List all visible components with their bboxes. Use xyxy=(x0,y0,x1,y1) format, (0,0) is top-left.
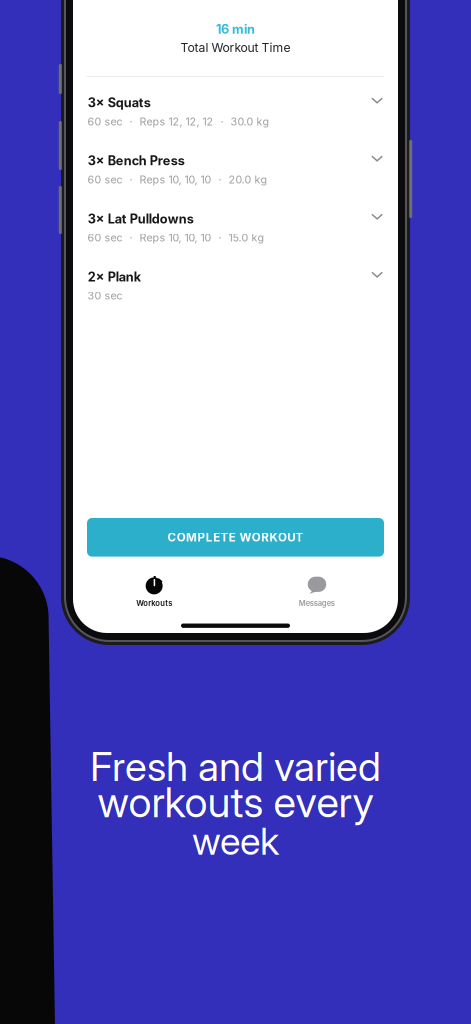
staticText: · xyxy=(130,231,133,244)
staticText: 60 sec xyxy=(88,173,123,186)
button[interactable]: 3× Squats xyxy=(73,89,398,147)
staticText: 60 sec xyxy=(88,115,123,128)
staticText: week xyxy=(192,818,279,864)
button[interactable]: 3× Bench Press xyxy=(73,147,398,205)
button[interactable]: COMPLETE WORKOUT xyxy=(87,518,384,557)
staticText: Total Workout Time xyxy=(180,40,290,55)
staticText: Reps 12, 12, 12 xyxy=(140,115,214,128)
staticText: 30.0 kg xyxy=(231,115,270,128)
staticText: COMPLETE WORKOUT xyxy=(167,530,304,544)
staticText: · xyxy=(219,173,222,186)
staticText: Reps 10, 10, 10 xyxy=(140,231,212,244)
button[interactable]: 2× Plank xyxy=(73,263,398,321)
staticText: Messages xyxy=(299,599,335,608)
button[interactable]: 3× Lat Pulldowns xyxy=(73,205,398,263)
button[interactable]: Messages xyxy=(235,577,398,617)
staticText: 15.0 kg xyxy=(229,231,265,244)
staticText: 60 sec xyxy=(88,231,123,244)
staticText: 2× Plank xyxy=(88,269,141,284)
staticText: · xyxy=(219,231,222,244)
staticText: Fresh and varied xyxy=(90,742,381,791)
staticText: Reps 10, 10, 10 xyxy=(140,173,212,186)
staticText: 3× Lat Pulldowns xyxy=(88,211,194,226)
staticText: · xyxy=(130,115,133,128)
staticText: 3× Bench Press xyxy=(88,153,185,168)
button[interactable]: Workouts xyxy=(73,577,235,617)
staticText: 3× Squats xyxy=(88,95,151,110)
staticText: Workouts xyxy=(136,599,172,608)
staticText: 16 min xyxy=(216,22,255,37)
staticText: 20.0 kg xyxy=(229,173,268,186)
staticText: 30 sec xyxy=(88,289,123,302)
staticText: · xyxy=(130,173,133,186)
staticText: workouts every xyxy=(97,777,373,827)
staticText: · xyxy=(221,115,224,128)
